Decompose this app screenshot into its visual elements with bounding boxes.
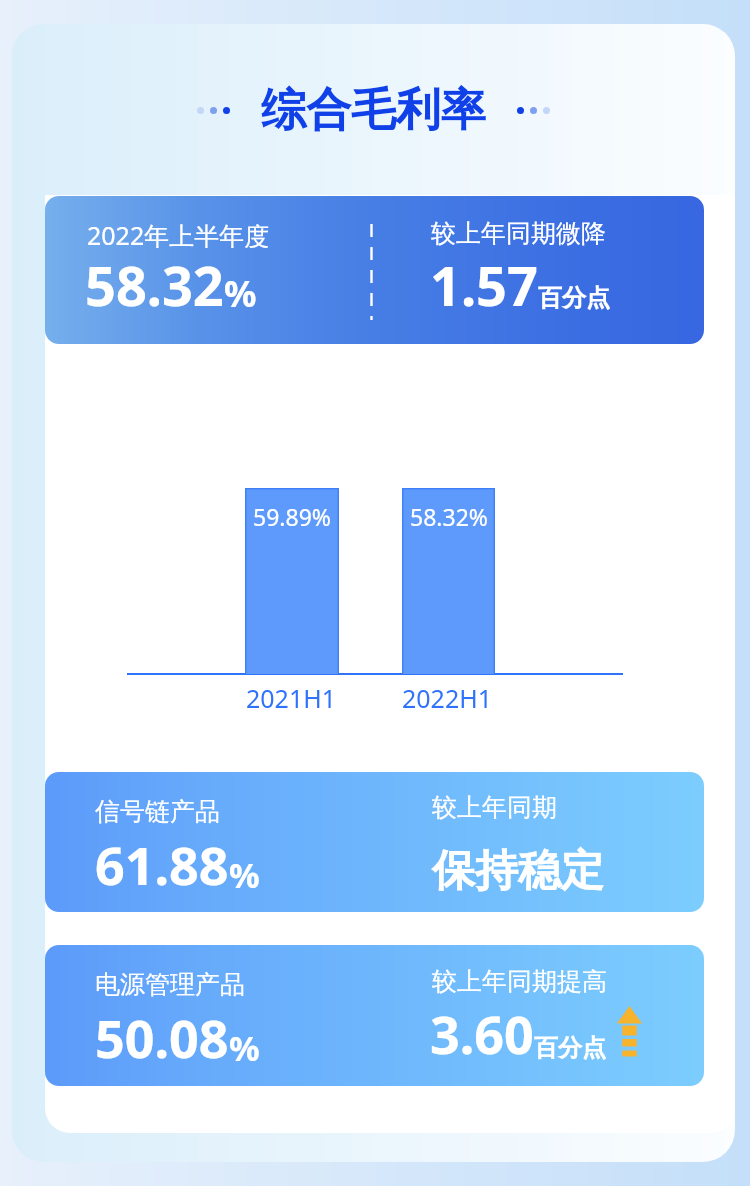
staticText: 百分点 (534, 1033, 606, 1063)
staticText: 58.32% (410, 501, 488, 532)
staticText: 电源管理产品 (95, 969, 245, 1000)
button[interactable]: 电源管理产品 (45, 945, 704, 1086)
staticText: 2022年上半年度 (87, 218, 270, 252)
staticText: 50.08 (95, 1002, 229, 1073)
staticText: 2022H1 (402, 681, 493, 715)
staticText: 较上年同期提高 (432, 966, 607, 997)
staticText: % (224, 269, 257, 318)
staticText: 百分点 (538, 283, 610, 313)
staticText: 59.89% (253, 501, 331, 532)
other: Increase (617, 1006, 642, 1057)
button[interactable]: 2022年上半年度 (45, 196, 704, 344)
staticText: 信号链产品 (95, 796, 220, 827)
staticText: 1.57 (430, 248, 538, 322)
staticText: 58.32 (85, 248, 224, 322)
staticText: 综合毛利率 (261, 82, 486, 139)
button[interactable]: 信号链产品 (45, 772, 704, 912)
staticText: 较上年同期微降 (431, 218, 606, 249)
staticText: 61.88 (95, 829, 229, 900)
staticText: 较上年同期 (432, 792, 557, 823)
staticText: 3.60 (430, 998, 534, 1069)
staticText: 保持稳定 (432, 844, 604, 898)
staticText: % (229, 1025, 260, 1071)
staticText: % (229, 852, 260, 898)
staticText: 2021H1 (246, 681, 337, 715)
